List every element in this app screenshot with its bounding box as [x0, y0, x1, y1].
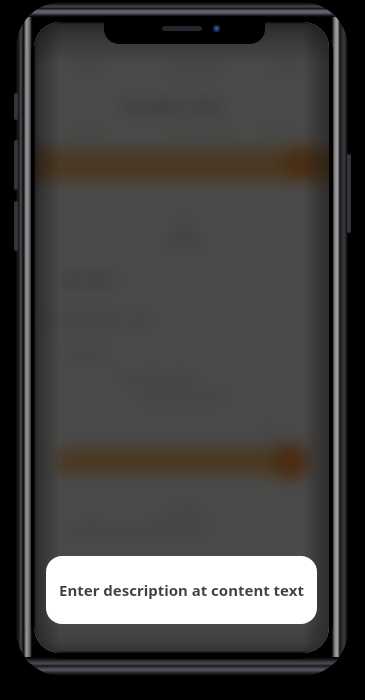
staticText: Tag	[261, 423, 283, 441]
staticText: Enter description at content text	[59, 580, 304, 600]
button[interactable]: Enter description at content text	[46, 556, 317, 624]
